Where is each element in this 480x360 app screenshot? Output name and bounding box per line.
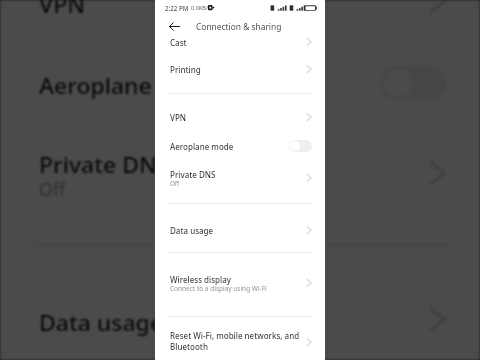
staticText: Data usage [170, 225, 214, 236]
staticText: Aeroplane mode [39, 69, 223, 100]
staticText: Printing [170, 64, 201, 75]
staticText: Connect to a display using Wi-Fi [170, 284, 267, 293]
button[interactable]: Back [163, 16, 185, 37]
staticText: Aeroplane mode [170, 141, 234, 152]
staticText: Off [39, 176, 68, 198]
staticText: Wireless display [170, 274, 232, 285]
button[interactable]: Reset Wi-Fi, mobile networks, and Blueto… [155, 326, 325, 360]
button[interactable]: Private DNS [155, 160, 325, 190]
staticText: 2:22 PM [165, 4, 189, 12]
button[interactable]: Data usage [155, 214, 325, 244]
button[interactable]: Wireless display [155, 264, 325, 308]
staticText: Data usage [39, 305, 165, 336]
button[interactable]: VPN [155, 104, 325, 132]
staticText: Connection & sharing [196, 21, 282, 32]
button[interactable]: Aeroplane mode [155, 132, 325, 160]
staticText: VPN [170, 112, 187, 123]
staticText: 0.0KB/s [191, 4, 211, 12]
staticText: Private DNS [170, 169, 216, 180]
staticText: Off [170, 179, 180, 187]
staticText: Private DNS [39, 148, 171, 179]
staticText: Reset Wi-Fi, mobile networks, and Blueto… [170, 330, 301, 352]
staticText: VPN [39, 0, 88, 18]
button[interactable]: Printing [155, 58, 325, 85]
staticText: Cast [170, 37, 187, 48]
button[interactable]: Aeroplane mode off [289, 140, 312, 152]
button[interactable]: Cast [155, 31, 325, 58]
